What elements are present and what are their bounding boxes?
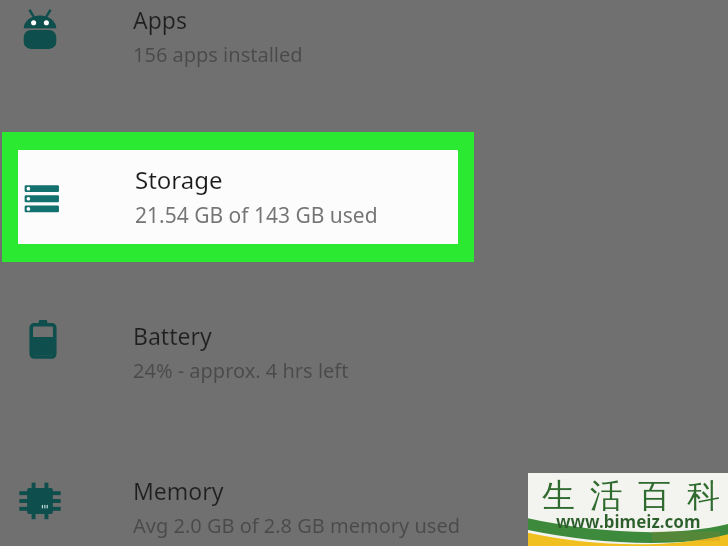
staticText: 百 bbox=[638, 475, 671, 517]
staticText: Avg 2.0 GB of 2.8 GB memory used bbox=[133, 512, 460, 539]
staticText: Apps bbox=[133, 4, 188, 35]
staticText: 活 bbox=[590, 475, 623, 517]
button[interactable]: Apps bbox=[0, 0, 728, 102]
staticText: Storage bbox=[135, 163, 223, 196]
staticText: 21.54 GB of 143 GB used bbox=[135, 201, 378, 230]
staticText: 156 apps installed bbox=[133, 41, 303, 68]
button[interactable]: Battery bbox=[0, 300, 728, 410]
staticText: www.bimeiz.com bbox=[556, 510, 701, 533]
staticText: 24% - approx. 4 hrs left bbox=[133, 357, 349, 384]
button[interactable]: Storage bbox=[2, 132, 474, 262]
staticText: 科 bbox=[687, 475, 720, 517]
staticText: 生 bbox=[542, 475, 575, 517]
staticText: Memory bbox=[133, 475, 224, 506]
staticText: Battery bbox=[133, 320, 212, 351]
button[interactable]: Memory bbox=[0, 455, 728, 546]
